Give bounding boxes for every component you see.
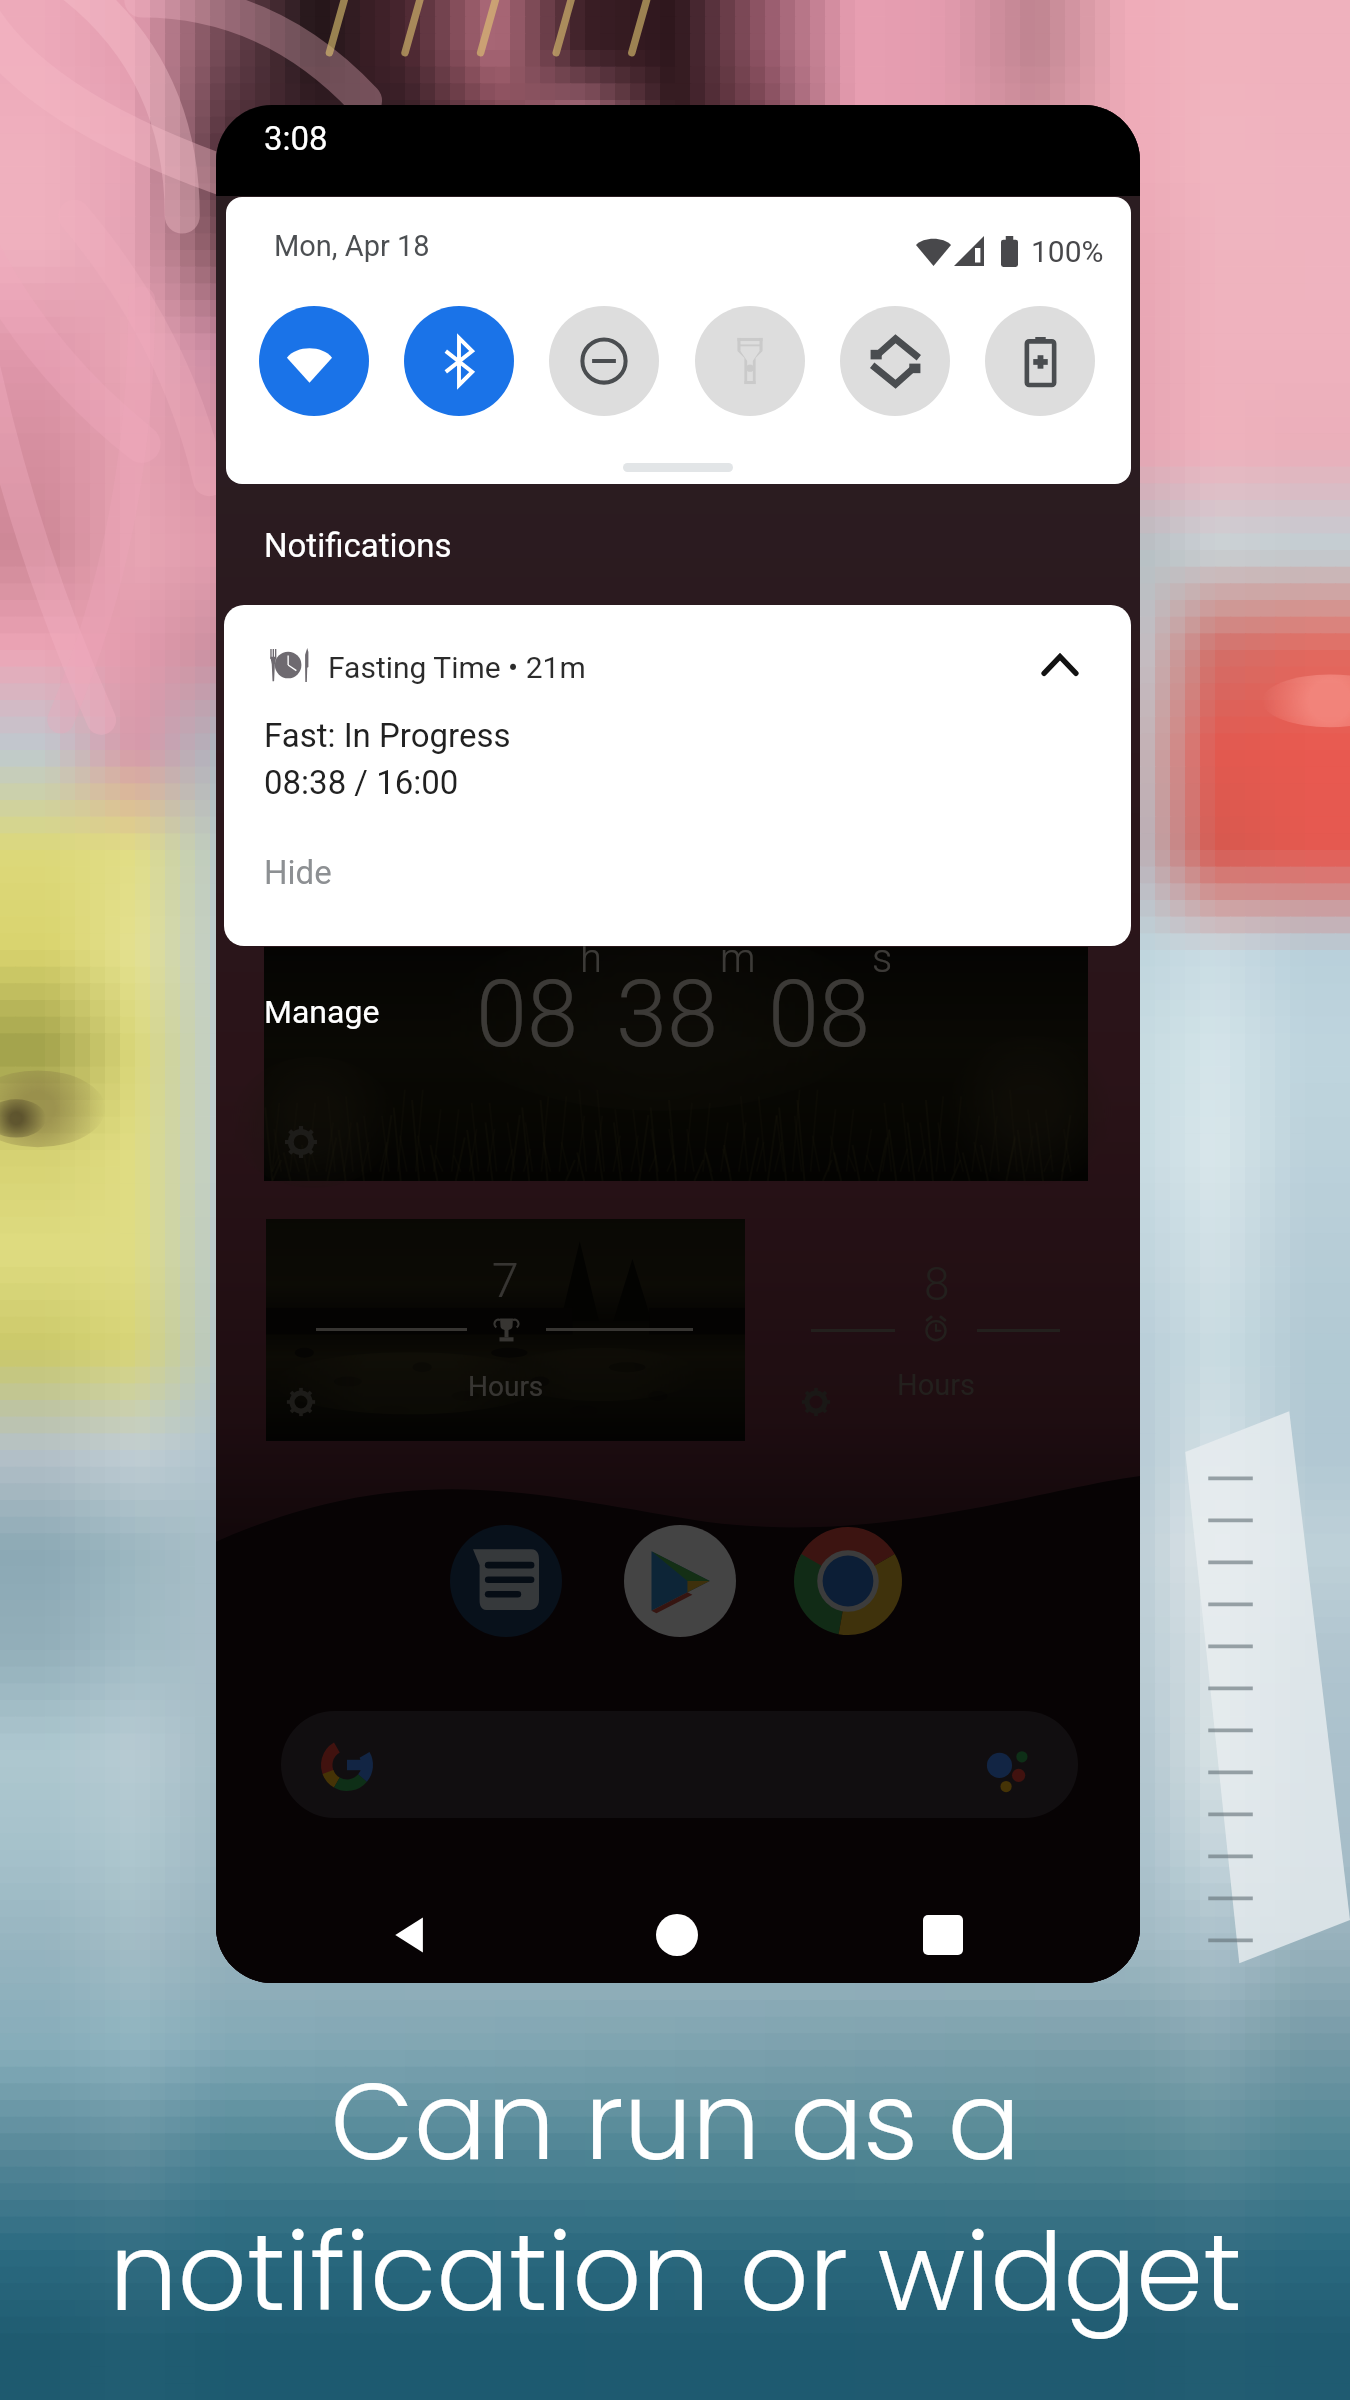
staticText: 3:08 <box>264 119 328 158</box>
button[interactable] <box>450 1525 562 1637</box>
button[interactable]: Chrome <box>792 1525 904 1637</box>
staticText: 08 <box>768 961 871 1069</box>
staticText: 08:38 / 16:00 <box>264 763 459 802</box>
button[interactable]: Wi-Fi <box>259 306 369 416</box>
staticText: m <box>720 935 756 982</box>
button[interactable]: Auto-rotate <box>840 306 950 416</box>
button[interactable] <box>624 1525 736 1637</box>
staticText: 08 <box>476 961 579 1069</box>
button[interactable]: Fasting Time • 21m <box>224 605 1131 946</box>
staticText: 38 <box>616 961 719 1069</box>
button[interactable]: Collapse <box>1015 621 1105 709</box>
button[interactable]: Back <box>364 1889 456 1981</box>
staticText: Hide <box>264 853 332 892</box>
button[interactable]: Home <box>631 1889 723 1981</box>
staticText: h <box>580 935 602 982</box>
staticText: Fasting Time • 21m <box>328 650 586 685</box>
button[interactable]: Manage <box>264 993 380 1031</box>
staticText: notification or widget <box>109 2197 1242 2348</box>
staticText: s <box>872 935 893 982</box>
button[interactable]: Recents <box>897 1889 989 1981</box>
button[interactable]: Battery saver <box>985 306 1095 416</box>
button[interactable]: Bluetooth <box>404 306 514 416</box>
staticText: Manage <box>264 993 380 1031</box>
button[interactable] <box>281 1711 1078 1818</box>
staticText: Hours <box>897 1368 976 1402</box>
staticText: 8 <box>924 1257 950 1311</box>
staticText: 100% <box>1031 234 1104 269</box>
button[interactable]: Do not disturb <box>549 306 659 416</box>
staticText: Mon, Apr 18 <box>274 229 430 263</box>
staticText: Notifications <box>264 526 452 565</box>
staticText: Fast: In Progress <box>264 716 511 755</box>
staticText: Hours <box>468 1370 544 1403</box>
button[interactable]: Flashlight <box>695 306 805 416</box>
staticText: Can run as a <box>330 2046 1021 2197</box>
staticText: 7 <box>492 1252 519 1308</box>
